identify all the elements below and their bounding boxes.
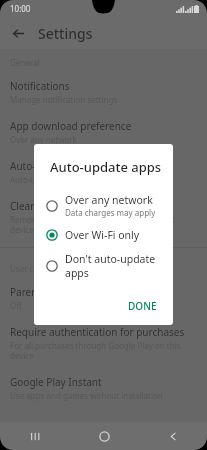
button[interactable]: DONE <box>120 293 165 319</box>
staticText: Data charges may apply <box>65 207 156 218</box>
button[interactable]: App download preference <box>0 112 207 152</box>
staticText: Manage notification settings <box>10 94 118 105</box>
staticText: Notifications <box>10 79 70 93</box>
button[interactable]: Require authentication for purchases <box>0 318 207 368</box>
staticText: DONE <box>128 299 157 313</box>
staticText: Auto-update apps <box>10 159 95 173</box>
staticText: Require authentication for purchases <box>10 325 185 339</box>
staticText: Clear local search history <box>10 199 128 213</box>
staticText: Don't auto-update apps <box>65 252 163 280</box>
staticText: Use apps and games without installation <box>10 390 163 401</box>
staticText: Remove the searches you have done on thi… <box>10 214 175 235</box>
staticText: User controls <box>10 263 60 274</box>
button[interactable]: Clear local search history <box>0 192 207 242</box>
staticText: 10:00 <box>10 3 31 14</box>
staticText: Over Wi-Fi only <box>65 228 140 242</box>
button[interactable]: Recent apps <box>20 422 50 450</box>
staticText: For all purchases through Google Play on… <box>10 340 197 361</box>
staticText: General <box>10 57 40 68</box>
button[interactable]: Don't auto-update apps <box>34 247 173 285</box>
staticText: Off <box>10 300 22 311</box>
button[interactable]: Parental controls <box>0 278 207 318</box>
staticText: Auto-update apps over Wi-Fi only <box>10 174 135 185</box>
button[interactable]: Over any network <box>34 188 173 223</box>
button[interactable]: Over Wi-Fi only <box>34 223 173 247</box>
button[interactable]: Google Play Instant <box>0 368 207 408</box>
staticText: Parental controls <box>10 285 90 299</box>
staticText: Google Play Instant <box>10 375 102 389</box>
button[interactable]: Back <box>158 422 188 450</box>
staticText: Over any network <box>65 193 153 207</box>
button[interactable]: Back <box>6 21 30 45</box>
button[interactable]: Notifications <box>0 72 207 112</box>
staticText: Over any network <box>10 134 77 145</box>
staticText: App download preference <box>10 119 132 133</box>
staticText: Auto-update apps <box>50 158 162 176</box>
button[interactable]: Home <box>89 422 119 450</box>
staticText: Settings <box>38 24 93 43</box>
button[interactable]: Auto-update apps <box>0 152 207 192</box>
